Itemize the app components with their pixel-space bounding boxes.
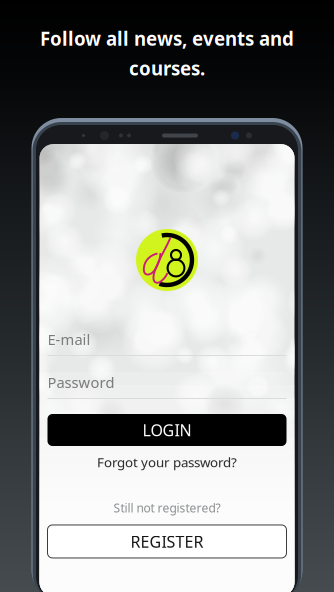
staticText: Password bbox=[47, 372, 114, 392]
button[interactable]: Password bbox=[47, 369, 286, 399]
staticText: Follow all news, events and bbox=[40, 26, 294, 51]
staticText: courses. bbox=[129, 56, 205, 81]
button[interactable]: LOGIN bbox=[47, 414, 286, 446]
staticText: REGISTER bbox=[130, 531, 203, 552]
staticText: LOGIN bbox=[142, 419, 191, 441]
button[interactable]: REGISTER bbox=[47, 525, 286, 558]
staticText: Forgot your password? bbox=[97, 453, 237, 471]
staticText: Still not registered? bbox=[113, 500, 220, 516]
staticText: E-mail bbox=[47, 329, 90, 349]
button[interactable]: E-mail bbox=[47, 326, 286, 356]
button[interactable]: Forgot your password? bbox=[47, 452, 286, 472]
